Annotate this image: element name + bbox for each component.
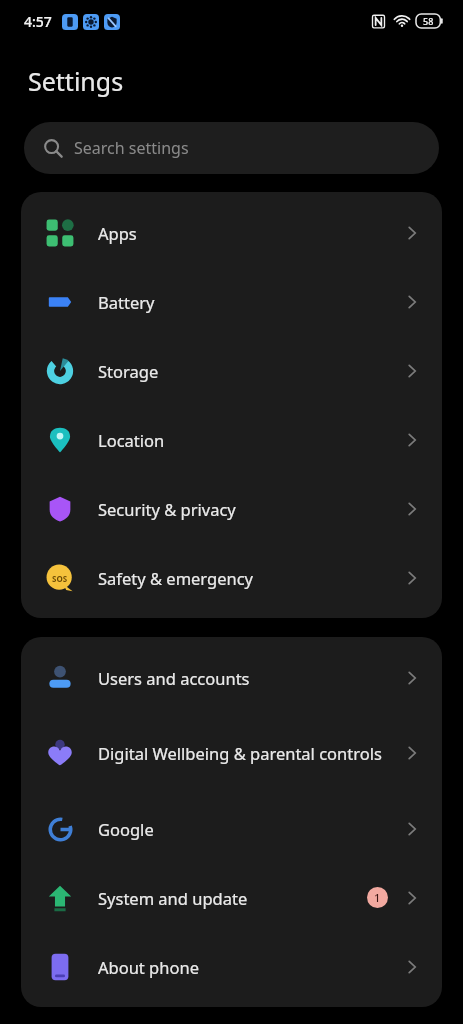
button[interactable]: Battery [21,267,442,336]
staticText: About phone [98,956,199,978]
staticText: Location [98,429,165,451]
staticText: 1 [374,890,381,905]
staticText: 4:57 [24,12,52,31]
staticText: Search settings [74,137,189,159]
staticText: Settings [28,64,124,98]
staticText: Apps [98,222,137,244]
button[interactable]: Location [21,405,442,474]
staticText: Storage [98,360,159,382]
button[interactable]: Users and accounts [21,643,442,712]
button[interactable]: Google [21,794,442,863]
staticText: Users and accounts [98,667,250,689]
button[interactable]: Apps [21,198,442,267]
button[interactable]: SOS [21,543,442,612]
staticText: Digital Wellbeing & parental controls [98,742,382,764]
staticText: Google [98,818,154,840]
button[interactable]: About phone [21,932,442,1001]
button[interactable]: Storage [21,336,442,405]
staticText: Battery [98,291,155,313]
staticText: Security & privacy [98,498,236,520]
staticText: SOS [52,573,68,584]
staticText: 58 [423,15,434,27]
button[interactable]: Digital Wellbeing & parental controls [21,712,442,794]
staticText: System and update [98,887,248,909]
button[interactable]: Search settings [24,122,439,174]
staticText: Safety & emergency [98,567,254,589]
button[interactable]: System and update [21,863,442,932]
button[interactable]: Security & privacy [21,474,442,543]
